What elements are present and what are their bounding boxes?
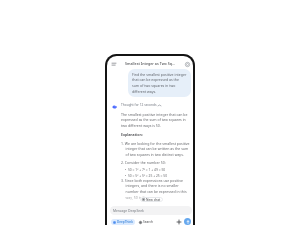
staticText: Search — [143, 220, 153, 224]
button[interactable]: Send message — [184, 218, 191, 225]
staticText: Explanation: — [121, 132, 143, 137]
staticText: Find the smallest positive integer that … — [132, 72, 187, 94]
staticText: • 50 = 1² + 7² = 1 + 49 = 50 — [125, 167, 166, 171]
button[interactable]: Attach file — [175, 218, 183, 225]
button[interactable]: Message DeepSeek — [110, 206, 192, 215]
staticText: Smallest Integer as Two Sq... — [125, 61, 175, 66]
staticText: 3. Since both expressions use positive i… — [121, 178, 187, 200]
button[interactable]: Account — [182, 59, 192, 69]
button[interactable]: Search — [138, 219, 154, 225]
button[interactable]: New chat — [140, 197, 163, 202]
button[interactable]: Find the smallest positive integer that … — [128, 69, 191, 97]
staticText: Message DeepSeek — [113, 208, 144, 213]
staticText: New chat — [146, 198, 161, 202]
button[interactable]: DeepThink — [111, 219, 135, 225]
staticText: 1. We are looking for the smallest posit… — [121, 141, 190, 157]
staticText: DeepThink — [117, 220, 133, 224]
staticText: The smallest positive integer that can b… — [121, 112, 188, 128]
staticText: 2. Consider the number 50: — [121, 160, 166, 165]
staticText: • 50 = 5² + 5² = 25 + 25 = 50 — [125, 173, 168, 177]
button[interactable]: Menu — [109, 59, 119, 69]
staticText: Thought for 12 seconds — [121, 103, 157, 107]
